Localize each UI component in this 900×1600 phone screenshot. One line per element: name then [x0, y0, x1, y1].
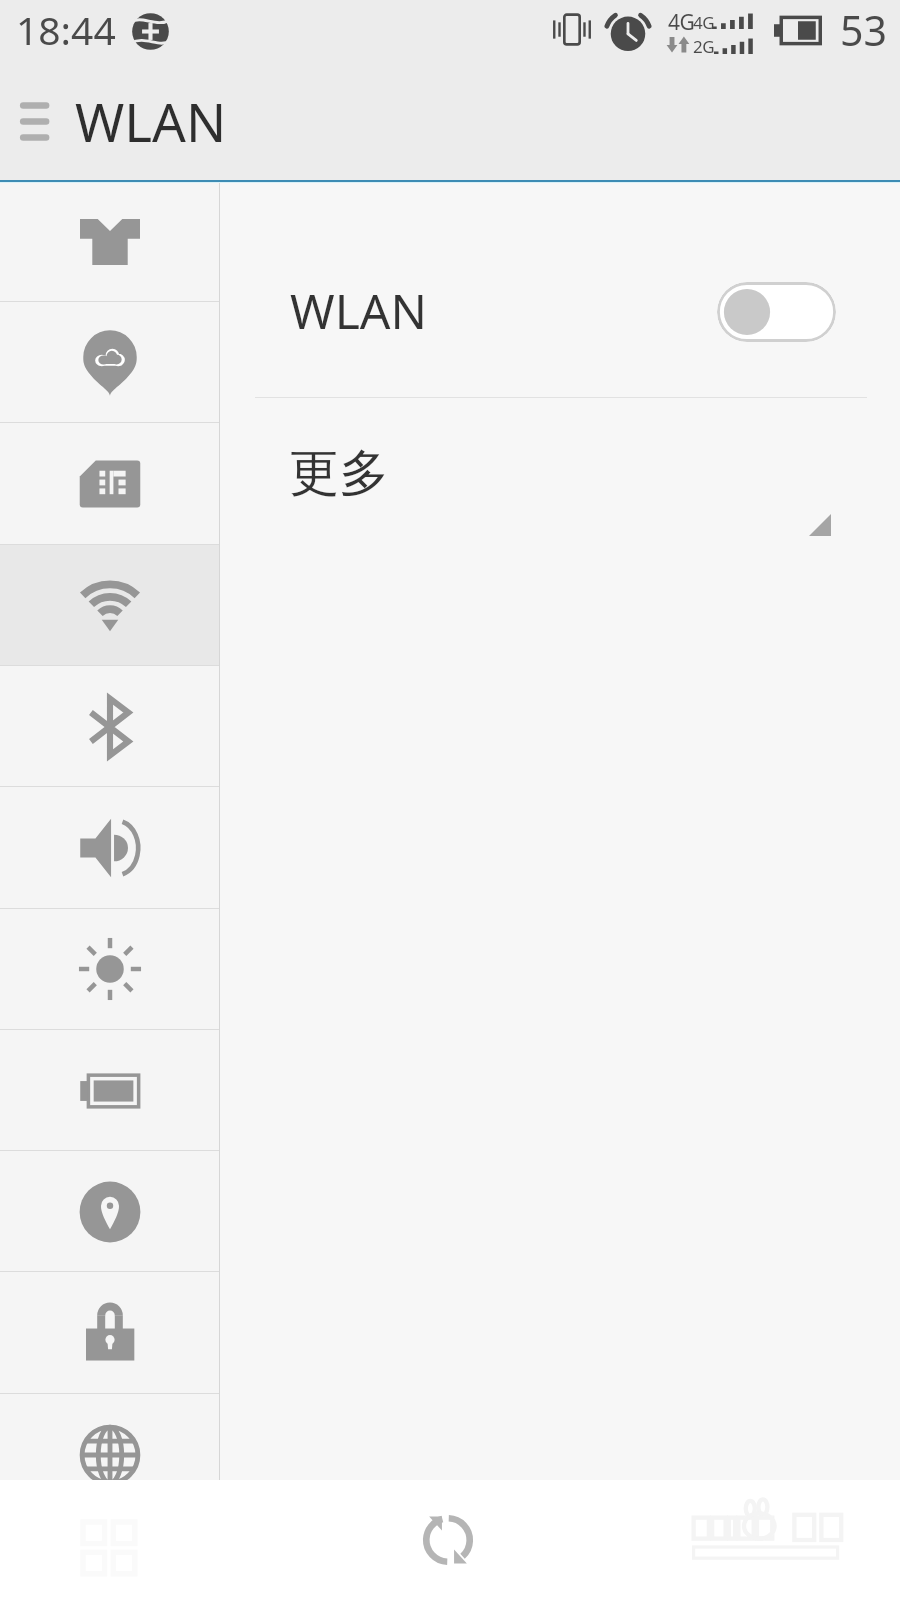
staticText: WLAN — [290, 278, 427, 343]
button[interactable]: Refresh — [419, 1511, 477, 1569]
button[interactable]: Location — [0, 1151, 220, 1272]
button[interactable]: Display — [0, 909, 220, 1030]
button[interactable]: WLAN — [0, 545, 220, 666]
button[interactable]: Language — [0, 1394, 220, 1480]
button[interactable]: Bluetooth — [0, 666, 220, 787]
button[interactable]: Menu — [10, 94, 72, 156]
staticText: 2G — [693, 35, 715, 58]
button[interactable]: WLAN — [220, 243, 900, 383]
staticText: 4G — [668, 8, 695, 37]
staticText: 18:44 — [16, 3, 116, 56]
button[interactable]: Cloud — [0, 302, 220, 423]
button[interactable]: Themes — [0, 183, 220, 302]
button[interactable]: Security — [0, 1273, 220, 1394]
staticText: WLAN — [75, 85, 227, 157]
button[interactable]: Resize — [809, 514, 831, 536]
staticText: 4G — [693, 11, 715, 34]
button[interactable]: 更多 — [220, 408, 900, 538]
button[interactable]: Sound — [0, 788, 220, 909]
button[interactable]: WLAN on/off switch — [717, 282, 836, 342]
staticText: 更多 — [289, 442, 389, 505]
button[interactable]: Battery — [0, 1030, 220, 1151]
button[interactable]: SIM card — [0, 424, 220, 545]
staticText: 53 — [840, 2, 887, 58]
